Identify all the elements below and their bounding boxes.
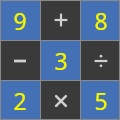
staticText: 9 [13,5,27,36]
button[interactable]: 2 [0,81,40,120]
button[interactable]: Minus [0,41,40,80]
button[interactable]: Multiply [41,81,80,120]
button[interactable]: 9 [0,0,40,40]
button[interactable]: Plus [41,0,80,40]
button[interactable]: 3 [41,41,80,80]
button[interactable]: Divide [81,41,120,80]
staticText: 2 [13,85,27,116]
staticText: 3 [54,45,68,76]
staticText: 8 [94,5,108,36]
button[interactable]: 5 [81,81,120,120]
button[interactable]: 8 [81,0,120,40]
staticText: 5 [94,85,108,116]
